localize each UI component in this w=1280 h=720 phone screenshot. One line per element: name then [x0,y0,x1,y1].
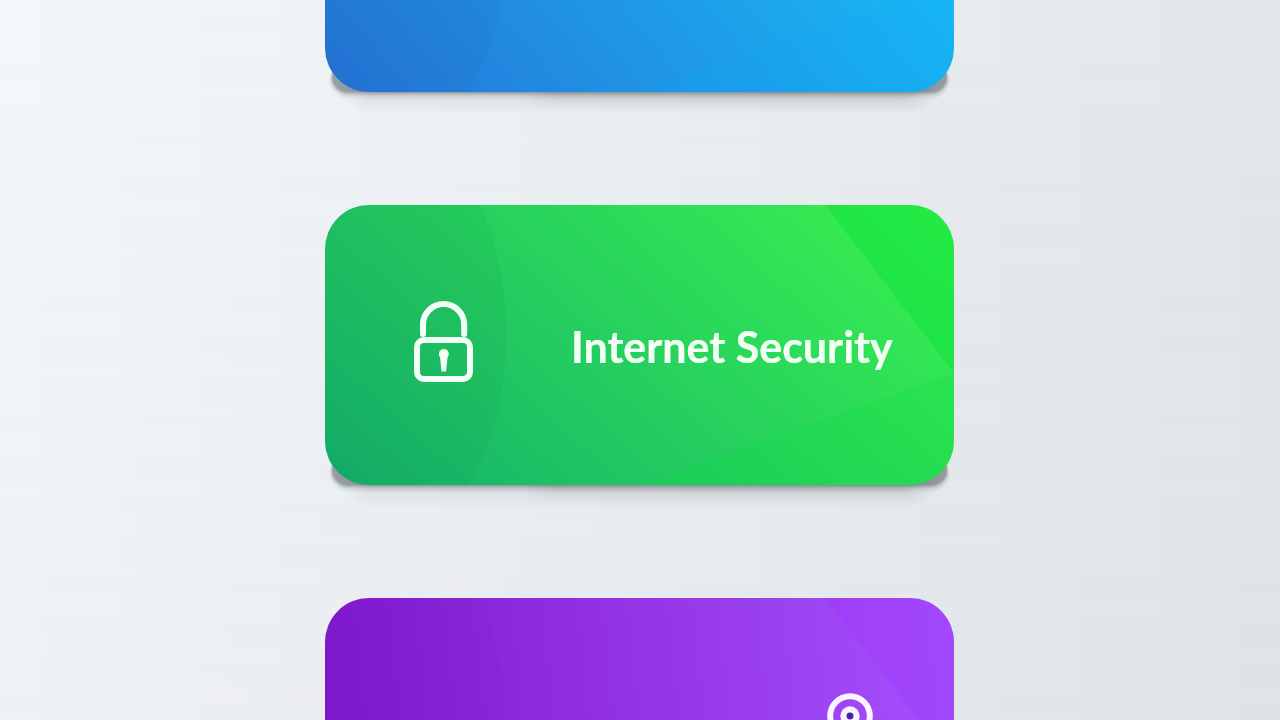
button[interactable]: Previous card [325,0,954,92]
button[interactable]: Internet Security [325,205,954,485]
button[interactable]: Privacy [325,598,954,720]
staticText: Internet Security [571,321,893,373]
